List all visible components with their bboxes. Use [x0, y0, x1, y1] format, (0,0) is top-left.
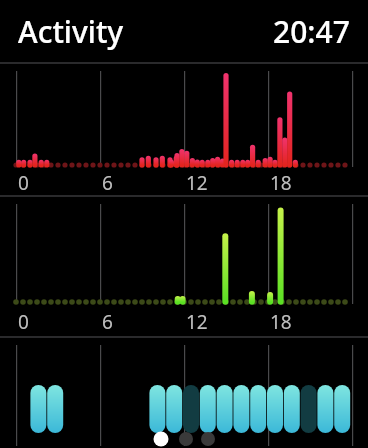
- button[interactable]: Steps activity chart: [0, 197, 368, 336]
- button[interactable]: Heart rate activity chart: [0, 64, 368, 195]
- staticText: 20:47: [273, 11, 350, 52]
- staticText: 0: [18, 309, 29, 333]
- staticText: Activity: [18, 11, 124, 52]
- button[interactable]: Sleep chart: [0, 338, 368, 448]
- staticText: 18: [270, 309, 292, 333]
- staticText: 6: [102, 309, 113, 333]
- staticText: 0: [18, 170, 29, 194]
- staticText: 12: [186, 309, 208, 333]
- staticText: 6: [102, 170, 113, 194]
- staticText: 18: [270, 170, 292, 194]
- staticText: 12: [186, 170, 208, 194]
